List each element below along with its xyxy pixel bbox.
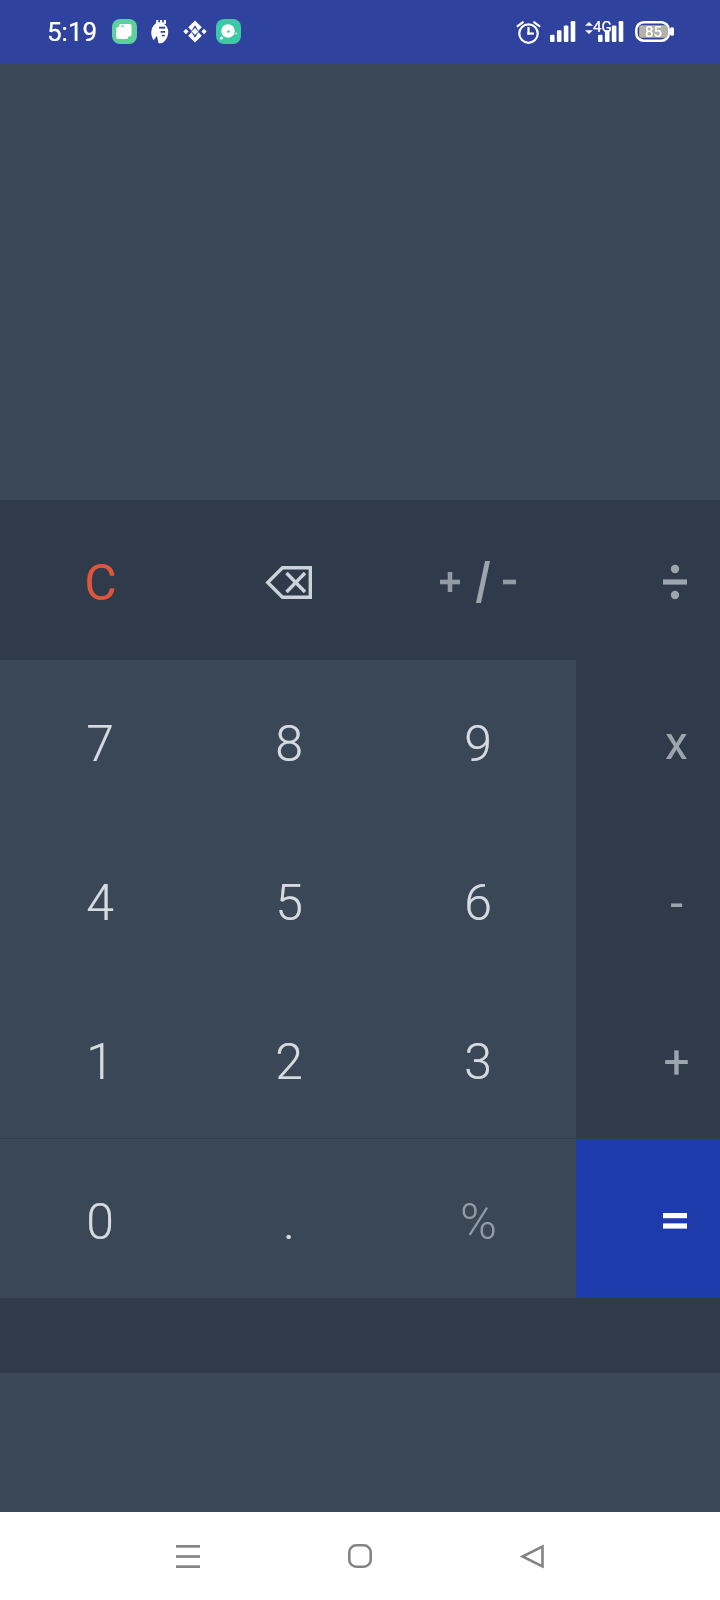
button[interactable]: 3 [384,979,576,1138]
button[interactable]: 1 [0,979,192,1138]
staticText: x [665,716,688,770]
button[interactable]: % [384,1139,576,1298]
staticText: 5:19 [47,17,98,47]
staticText: 8 [275,715,303,774]
button[interactable]: 0 [0,1139,192,1298]
staticText: + [663,1035,690,1089]
staticText: 7 [86,715,114,774]
staticText: 0 [86,1193,114,1252]
button[interactable]: . [192,1139,384,1298]
button[interactable]: Add [576,979,720,1138]
button[interactable]: Plus minus sign toggle [384,500,576,660]
button[interactable]: 2 [192,979,384,1138]
button[interactable]: Back [488,1512,576,1600]
button[interactable]: Clear [0,500,192,660]
staticText: 6 [464,874,492,933]
staticText: 4 [86,874,114,933]
staticText: 9 [464,715,492,774]
button[interactable]: Home [316,1512,404,1600]
staticText: 2 [275,1033,303,1092]
staticText: 1 [86,1033,114,1092]
staticText: 3 [464,1033,492,1092]
button[interactable]: Subtract [576,820,720,979]
button[interactable]: Multiply [576,660,720,820]
button[interactable]: 6 [384,820,576,979]
staticText: 85 [645,23,662,41]
button[interactable]: 7 [0,660,192,820]
staticText: 5 [275,874,303,933]
button[interactable]: Equals [576,1139,720,1298]
button[interactable]: Divide [576,500,720,660]
button[interactable]: Backspace [192,500,384,660]
button[interactable]: Recent apps [144,1512,232,1600]
staticText: . [283,1193,295,1252]
button[interactable]: 4 [0,820,192,979]
staticText: - [670,876,683,930]
button[interactable]: 5 [192,820,384,979]
button[interactable]: 8 [192,660,384,820]
button[interactable]: 9 [384,660,576,820]
staticText: 4G [593,18,612,36]
staticText: % [460,1193,497,1252]
staticText: C [84,554,117,613]
